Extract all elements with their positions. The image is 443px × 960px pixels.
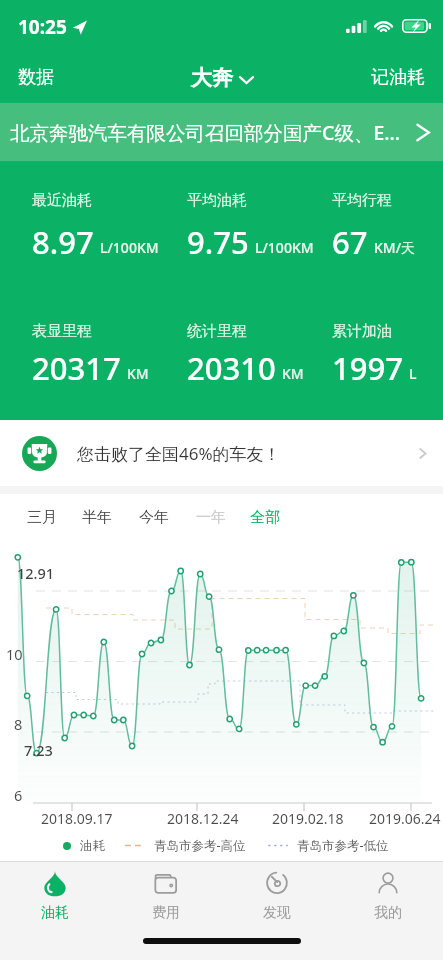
staticText: 您击败了全国46%的车友！ <box>77 442 281 465</box>
button[interactable]: 全部 <box>240 494 290 540</box>
other: 查看详情 <box>416 124 430 141</box>
staticText: 发现 <box>263 904 291 922</box>
staticText: 全部 <box>250 508 280 527</box>
staticText: 三月 <box>27 508 57 527</box>
staticText: 表显里程 <box>32 322 92 341</box>
staticText: 油耗 <box>80 838 105 854</box>
staticText: 青岛市参考-高位 <box>154 837 246 854</box>
staticText: 7.23 <box>24 740 53 760</box>
staticText: 10:25 <box>18 14 67 40</box>
button[interactable]: 大奔 <box>185 59 259 97</box>
staticText: 费用 <box>152 904 180 922</box>
staticText: 平均行程 <box>332 191 392 210</box>
staticText: 2019.02.18 <box>272 809 344 828</box>
button[interactable]: 发现 <box>221 862 332 932</box>
staticText: 20310 <box>187 347 276 389</box>
staticText: 8.97 <box>32 221 94 263</box>
staticText: 2019.06.24 <box>369 809 441 828</box>
staticText: 2018.09.17 <box>41 809 113 828</box>
button[interactable]: 三月 <box>17 494 67 540</box>
button[interactable]: 记油耗 <box>353 56 443 99</box>
staticText: 大奔 <box>191 65 233 91</box>
staticText: 今年 <box>139 508 169 527</box>
button[interactable]: 您击败了全国46%的车友！ <box>0 420 443 486</box>
staticText: 9.75 <box>187 221 249 263</box>
button[interactable]: 北京奔驰汽车有限公司召回部分国产C级、E… <box>0 103 443 161</box>
staticText: 数据 <box>18 66 54 89</box>
staticText: 2018.12.24 <box>167 809 239 828</box>
button[interactable]: 油耗 <box>0 862 110 932</box>
staticText: 油耗 <box>41 904 69 922</box>
staticText: 10 <box>6 644 23 664</box>
staticText: KM/天 <box>374 238 416 257</box>
staticText: 6 <box>14 785 23 805</box>
staticText: 青岛市参考-低位 <box>297 837 389 854</box>
button[interactable]: 数据 <box>0 56 72 99</box>
staticText: 记油耗 <box>371 66 425 89</box>
button[interactable]: 费用 <box>110 862 221 932</box>
staticText: 1997 <box>332 347 403 389</box>
staticText: 统计里程 <box>187 322 247 341</box>
staticText: L/100KM <box>100 238 159 257</box>
staticText: L/100KM <box>255 238 314 257</box>
staticText: KM <box>282 364 304 383</box>
staticText: 半年 <box>82 508 112 527</box>
button[interactable]: 我的 <box>332 862 443 932</box>
staticText: 平均油耗 <box>187 191 247 210</box>
staticText: 一年 <box>196 508 226 527</box>
staticText: 北京奔驰汽车有限公司召回部分国产C级、E… <box>10 119 412 146</box>
staticText: L <box>409 364 417 383</box>
button[interactable]: 半年 <box>72 494 122 540</box>
staticText: 67 <box>332 221 368 263</box>
button[interactable]: 今年 <box>129 494 179 540</box>
staticText: KM <box>127 364 149 383</box>
staticText: 12.91 <box>17 563 55 583</box>
staticText: 我的 <box>374 904 402 922</box>
button[interactable]: 一年 <box>186 494 236 540</box>
staticText: 最近油耗 <box>32 191 92 210</box>
staticText: 20317 <box>32 347 121 389</box>
staticText: 8 <box>14 714 23 734</box>
staticText: 累计加油 <box>332 322 392 341</box>
